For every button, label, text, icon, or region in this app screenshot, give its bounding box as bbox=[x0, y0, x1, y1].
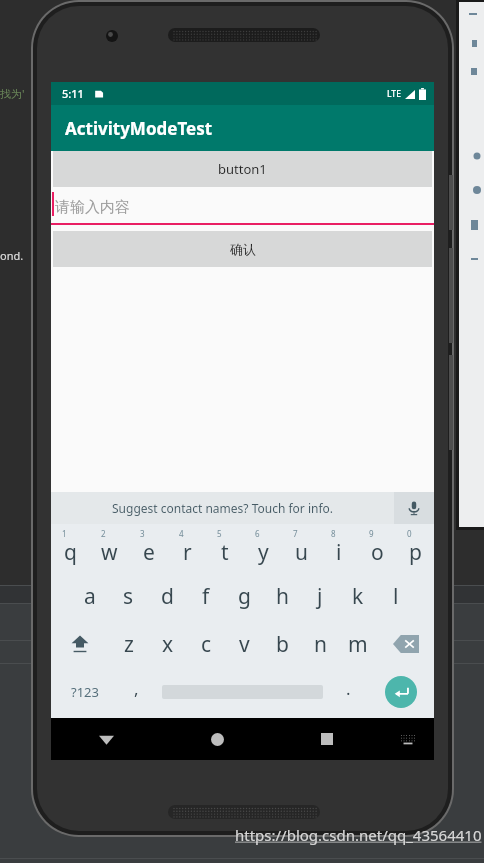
staticText: 5 bbox=[217, 528, 222, 539]
staticText: a bbox=[84, 582, 96, 611]
staticText: v bbox=[239, 630, 250, 659]
button[interactable]: 请输入内容 bbox=[51, 190, 434, 228]
button[interactable]: 6 bbox=[244, 524, 282, 572]
button[interactable]: 2 bbox=[90, 524, 129, 572]
staticText: g bbox=[238, 582, 251, 611]
staticText: 4 bbox=[179, 528, 184, 539]
staticText: y bbox=[258, 538, 269, 567]
staticText: c bbox=[201, 630, 212, 659]
button[interactable]: h bbox=[263, 572, 301, 620]
staticText: i bbox=[336, 538, 342, 567]
button[interactable]: n bbox=[301, 620, 339, 668]
staticText: 9 bbox=[369, 528, 374, 539]
staticText: j bbox=[317, 582, 323, 611]
button[interactable]: g bbox=[225, 572, 263, 620]
button[interactable]: k bbox=[339, 572, 377, 620]
staticText: q bbox=[64, 538, 77, 567]
button[interactable]: Enter bbox=[367, 668, 434, 716]
staticText: m bbox=[348, 630, 368, 659]
button[interactable]: l bbox=[377, 572, 415, 620]
staticText: e bbox=[143, 538, 155, 567]
button[interactable]: . bbox=[330, 668, 367, 716]
staticText: 6 bbox=[255, 528, 260, 539]
button[interactable]: s bbox=[109, 572, 148, 620]
button[interactable]: 0 bbox=[396, 524, 434, 572]
staticText: b bbox=[276, 630, 289, 659]
button[interactable]: x bbox=[148, 620, 187, 668]
staticText: r bbox=[183, 538, 192, 567]
button[interactable]: Recent apps bbox=[272, 718, 382, 760]
button[interactable]: 8 bbox=[320, 524, 358, 572]
staticText: 2 bbox=[101, 528, 106, 539]
button[interactable]: Switch keyboard bbox=[382, 718, 434, 760]
button[interactable]: Home bbox=[162, 718, 272, 760]
button[interactable]: Back bbox=[51, 718, 162, 760]
button[interactable]: 确认 bbox=[53, 231, 432, 267]
staticText: 找为' bbox=[0, 86, 25, 101]
button[interactable]: d bbox=[148, 572, 187, 620]
staticText: h bbox=[276, 582, 289, 611]
staticText: w bbox=[101, 538, 118, 567]
staticText: 5:11 bbox=[62, 86, 84, 101]
button[interactable]: button1 bbox=[53, 151, 432, 187]
button[interactable]: Shift bbox=[51, 620, 109, 668]
staticText: 确认 bbox=[230, 241, 256, 257]
staticText: https://blog.csdn.net/qq_43564410 bbox=[235, 825, 482, 845]
staticText: 1 bbox=[62, 528, 67, 539]
button[interactable]: 7 bbox=[282, 524, 320, 572]
button[interactable]: Backspace bbox=[377, 620, 434, 668]
staticText: ond. bbox=[0, 248, 24, 263]
staticText: ActivityModeTest bbox=[65, 117, 213, 140]
staticText: z bbox=[124, 630, 134, 659]
staticText: LTE bbox=[387, 88, 401, 100]
button[interactable]: Voice input bbox=[394, 492, 434, 524]
staticText: , bbox=[134, 677, 139, 700]
staticText: 3 bbox=[140, 528, 145, 539]
button[interactable]: 4 bbox=[168, 524, 206, 572]
staticText: ?123 bbox=[71, 683, 99, 701]
staticText: d bbox=[161, 582, 174, 611]
button[interactable]: v bbox=[225, 620, 263, 668]
button[interactable] bbox=[155, 668, 330, 716]
staticText: button1 bbox=[218, 160, 267, 178]
staticText: 7 bbox=[293, 528, 298, 539]
button[interactable]: j bbox=[301, 572, 339, 620]
staticText: p bbox=[409, 538, 422, 567]
button[interactable]: m bbox=[339, 620, 377, 668]
staticText: Suggest contact names? Touch for info. bbox=[112, 500, 334, 516]
staticText: s bbox=[123, 582, 134, 611]
staticText: 0 bbox=[407, 528, 412, 539]
button[interactable]: , bbox=[118, 668, 155, 716]
button[interactable]: 9 bbox=[358, 524, 396, 572]
staticText: t bbox=[221, 538, 229, 567]
staticText: n bbox=[314, 630, 327, 659]
staticText: l bbox=[393, 582, 399, 611]
button[interactable]: 5 bbox=[206, 524, 244, 572]
staticText: x bbox=[162, 630, 174, 659]
staticText: . bbox=[346, 677, 351, 700]
button[interactable]: 3 bbox=[129, 524, 168, 572]
staticText: k bbox=[352, 582, 364, 611]
button[interactable]: b bbox=[263, 620, 301, 668]
button[interactable]: a bbox=[70, 572, 109, 620]
staticText: 请输入内容 bbox=[55, 198, 130, 217]
button[interactable]: ?123 bbox=[51, 668, 118, 716]
staticText: 8 bbox=[331, 528, 336, 539]
button[interactable]: 1 bbox=[51, 524, 90, 572]
staticText: o bbox=[371, 538, 384, 567]
button[interactable]: z bbox=[109, 620, 148, 668]
button[interactable]: c bbox=[187, 620, 225, 668]
button[interactable]: Suggest contact names? Touch for info. bbox=[51, 492, 394, 524]
staticText: u bbox=[295, 538, 308, 567]
staticText: f bbox=[202, 582, 210, 611]
button[interactable]: f bbox=[187, 572, 225, 620]
